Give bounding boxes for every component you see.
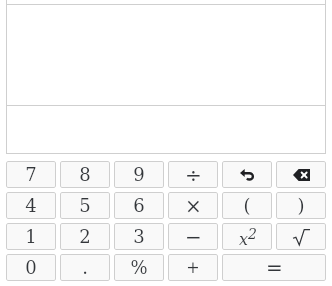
staticText: 3	[133, 226, 145, 247]
button[interactable]: 3	[114, 223, 164, 250]
button[interactable]: 2	[60, 223, 110, 250]
button[interactable]: Backspace	[276, 161, 326, 188]
staticText: 8	[79, 164, 91, 185]
staticText: 2	[248, 226, 257, 242]
staticText: 0	[25, 257, 37, 278]
button[interactable]: 7	[6, 161, 56, 188]
staticText: 7	[25, 164, 37, 185]
staticText: 2	[79, 226, 91, 247]
button[interactable]: .	[60, 254, 110, 281]
button[interactable]: 8	[60, 161, 110, 188]
staticText: +	[186, 258, 200, 277]
button[interactable]: )	[276, 192, 326, 219]
staticText: 4	[25, 195, 37, 216]
staticText: )	[297, 195, 305, 216]
staticText: 5	[79, 195, 91, 216]
staticText: x	[239, 230, 249, 249]
button[interactable]: x squared	[222, 223, 272, 250]
button[interactable]: 5	[60, 192, 110, 219]
staticText: =	[266, 256, 283, 279]
staticText: 1	[25, 226, 37, 247]
button[interactable]: 1	[6, 223, 56, 250]
button[interactable]: ×	[168, 192, 218, 219]
button[interactable]: 4	[6, 192, 56, 219]
staticText: %	[130, 257, 148, 278]
staticText: 9	[133, 164, 145, 185]
staticText: ×	[185, 194, 202, 217]
button[interactable]: 9	[114, 161, 164, 188]
staticText: 6	[133, 195, 145, 216]
staticText: ÷	[185, 163, 202, 186]
button[interactable]: 6	[114, 192, 164, 219]
button[interactable]: Square root	[276, 223, 326, 250]
button[interactable]: 0	[6, 254, 56, 281]
button[interactable]: =	[222, 254, 326, 281]
staticText: .	[82, 257, 88, 278]
button[interactable]: ÷	[168, 161, 218, 188]
button[interactable]: −	[168, 223, 218, 250]
button[interactable]: +	[168, 254, 218, 281]
button[interactable]: Undo	[222, 161, 272, 188]
button[interactable]: %	[114, 254, 164, 281]
staticText: −	[185, 225, 202, 248]
staticText: (	[243, 195, 251, 216]
button[interactable]: (	[222, 192, 272, 219]
